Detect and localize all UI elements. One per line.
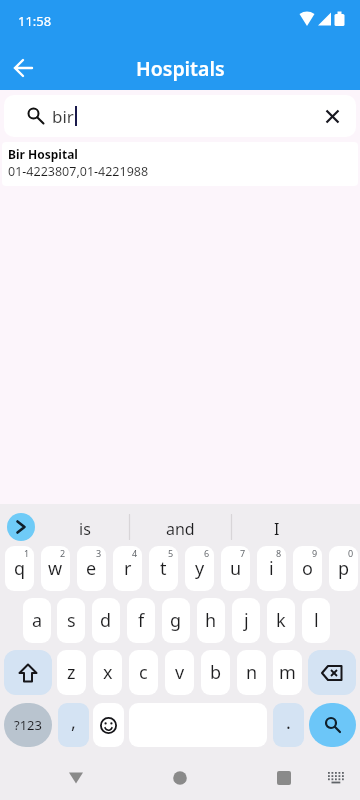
- button[interactable]: [309, 703, 356, 747]
- staticText: d: [100, 608, 112, 633]
- staticText: and: [166, 518, 195, 540]
- button[interactable]: b: [201, 650, 230, 695]
- staticText: j: [244, 608, 249, 633]
- button[interactable]: [60, 764, 92, 792]
- button[interactable]: i: [257, 546, 286, 591]
- staticText: v: [175, 660, 185, 685]
- staticText: is: [79, 518, 91, 540]
- staticText: a: [32, 608, 43, 633]
- button[interactable]: is: [40, 510, 129, 548]
- button[interactable]: [164, 764, 196, 792]
- button[interactable]: [7, 513, 35, 541]
- button[interactable]: t: [149, 546, 178, 591]
- button[interactable]: [316, 100, 348, 132]
- staticText: 7: [240, 547, 246, 559]
- button[interactable]: w: [41, 546, 70, 591]
- button[interactable]: and: [130, 510, 231, 548]
- button[interactable]: e: [77, 546, 106, 591]
- button[interactable]: Bir Hospital: [2, 142, 358, 186]
- staticText: b: [210, 660, 222, 685]
- staticText: r: [124, 556, 132, 581]
- button[interactable]: m: [273, 650, 302, 695]
- staticText: i: [269, 556, 274, 581]
- staticText: g: [170, 608, 182, 633]
- button[interactable]: l: [302, 598, 330, 643]
- button[interactable]: p: [329, 546, 358, 591]
- button[interactable]: bir: [4, 95, 356, 137]
- staticText: 2: [60, 547, 66, 559]
- button[interactable]: h: [197, 598, 225, 643]
- staticText: o: [302, 556, 313, 581]
- staticText: 01-4223807,01-4221988: [8, 163, 149, 179]
- button[interactable]: c: [129, 650, 158, 695]
- button[interactable]: r: [113, 546, 142, 591]
- staticText: 4: [132, 547, 138, 559]
- staticText: bir: [52, 105, 74, 128]
- staticText: 6: [204, 547, 210, 559]
- button[interactable]: v: [165, 650, 194, 695]
- button[interactable]: j: [232, 598, 260, 643]
- staticText: Hospitals: [136, 55, 225, 82]
- button[interactable]: I: [232, 510, 321, 548]
- button[interactable]: s: [57, 598, 85, 643]
- staticText: c: [139, 660, 148, 685]
- staticText: y: [195, 556, 205, 581]
- button[interactable]: [322, 764, 350, 792]
- staticText: f: [138, 608, 145, 633]
- staticText: z: [67, 660, 76, 685]
- button[interactable]: k: [267, 598, 295, 643]
- staticText: 3: [96, 547, 102, 559]
- staticText: p: [338, 556, 350, 581]
- staticText: e: [86, 556, 97, 581]
- button[interactable]: n: [237, 650, 266, 695]
- staticText: m: [279, 660, 296, 685]
- staticText: 9: [312, 547, 318, 559]
- staticText: n: [246, 660, 258, 685]
- button[interactable]: g: [162, 598, 190, 643]
- button[interactable]: z: [57, 650, 86, 695]
- button[interactable]: q: [5, 546, 34, 591]
- button[interactable]: .: [273, 703, 304, 747]
- staticText: l: [314, 608, 319, 633]
- staticText: h: [205, 608, 217, 633]
- staticText: s: [67, 608, 76, 633]
- button[interactable]: f: [127, 598, 155, 643]
- button[interactable]: [6, 52, 40, 84]
- button[interactable]: u: [221, 546, 250, 591]
- staticText: w: [48, 556, 63, 581]
- staticText: ?123: [14, 716, 42, 734]
- button[interactable]: x: [93, 650, 122, 695]
- staticText: q: [14, 556, 26, 581]
- button[interactable]: [93, 703, 124, 747]
- staticText: k: [276, 608, 286, 633]
- button[interactable]: [308, 650, 356, 695]
- button[interactable]: d: [92, 598, 120, 643]
- button[interactable]: o: [293, 546, 322, 591]
- staticText: x: [103, 660, 113, 685]
- staticText: ,: [71, 710, 76, 735]
- button[interactable]: ?123: [4, 703, 52, 747]
- staticText: 5: [168, 547, 174, 559]
- button[interactable]: [4, 650, 52, 695]
- button[interactable]: y: [185, 546, 214, 591]
- staticText: .: [286, 710, 291, 735]
- button[interactable]: ,: [58, 703, 89, 747]
- staticText: 11:58: [18, 12, 52, 28]
- staticText: t: [160, 556, 167, 581]
- staticText: u: [230, 556, 242, 581]
- staticText: 0: [348, 547, 354, 559]
- button[interactable]: [268, 764, 300, 792]
- staticText: I: [274, 518, 280, 540]
- staticText: Bir Hospital: [8, 146, 78, 162]
- staticText: 1: [24, 547, 30, 559]
- button[interactable]: a: [23, 598, 51, 643]
- staticText: 8: [276, 547, 282, 559]
